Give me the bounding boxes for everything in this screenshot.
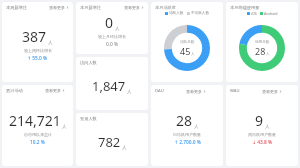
staticText: 10.2 % (30, 139, 45, 146)
staticText: 人 (62, 124, 67, 130)
button[interactable]: 查看更多 (49, 5, 69, 10)
staticText: 本月活跃度 (155, 5, 176, 10)
staticText: 累计活动 (6, 88, 23, 93)
staticText: 28 (255, 45, 266, 57)
staticText: 日活跃用户数量 (173, 132, 201, 137)
button[interactable]: 本周新增注册人数 (2, 2, 73, 82)
staticText: 人 (115, 26, 120, 32)
staticText: 登录人数 (80, 116, 97, 121)
staticText: 人 (48, 40, 53, 46)
staticText: ↑ 2,700.0 % (174, 139, 201, 146)
button[interactable]: 访问人数 (76, 57, 148, 110)
button[interactable]: DAU (151, 85, 223, 166)
staticText: 782 (98, 133, 121, 151)
staticText: 自启用以来总计 (24, 132, 52, 137)
staticText: 查看更多 (262, 89, 278, 94)
staticText: 0 (105, 13, 114, 32)
staticText: iOS (251, 11, 257, 16)
staticText: 访问人数 (80, 60, 97, 65)
staticText: 人 (191, 52, 195, 57)
staticText: 人 (127, 89, 132, 95)
staticText: 1,847 (92, 77, 126, 95)
staticText: 查看更多 (186, 89, 202, 94)
button[interactable]: 登录人数 (76, 113, 148, 166)
staticText: 活跃总数 (180, 40, 195, 45)
button[interactable]: 查看更多 (262, 89, 282, 94)
staticText: 本周新增注册人数 (6, 5, 27, 10)
staticText: ↑ 55.0 % (27, 55, 48, 62)
staticText: 0.0 % (106, 41, 119, 48)
staticText: 较上周环比增长 (24, 48, 52, 53)
button[interactable]: 查看更多 (186, 89, 206, 94)
staticText: 9 (255, 111, 264, 130)
button[interactable]: 查看更多 (124, 5, 144, 10)
staticText: 28 (176, 111, 193, 130)
button[interactable]: WAU (226, 85, 298, 166)
staticText: 本月新增注册人数 (80, 5, 102, 10)
staticText: WAU (230, 88, 240, 94)
staticText: ↓ 43.8 % (252, 139, 273, 146)
staticText: 人 (265, 124, 270, 130)
button[interactable]: 本月活跃度 (151, 2, 223, 82)
staticText: 214,721 (9, 111, 61, 130)
button[interactable]: 本月终端使用量 (226, 2, 298, 82)
staticText: 本月终端使用量 (230, 5, 260, 10)
staticText: 387 (22, 27, 47, 46)
staticText: Android (264, 11, 278, 16)
staticText: 45 (180, 45, 191, 57)
staticText: 查看更多 (124, 5, 140, 10)
staticText: 不活跃人数 (191, 11, 209, 16)
staticText: 较上月环比增长 (98, 34, 126, 39)
staticText: 人 (122, 145, 127, 151)
button[interactable]: 累计活动 (2, 85, 73, 166)
staticText: 使用总数 (255, 40, 270, 45)
button[interactable]: 本月新增注册人数 (76, 2, 148, 54)
button[interactable]: 查看更多 (45, 88, 65, 93)
staticText: 活跃人数 (169, 11, 184, 16)
staticText: 人 (194, 124, 199, 130)
staticText: DAU (155, 88, 164, 94)
staticText: 查看更多 (49, 5, 65, 10)
staticText: 人 (266, 52, 270, 57)
staticText: 周活跃用户数量 (248, 132, 276, 137)
staticText: 查看更多 (45, 88, 61, 93)
